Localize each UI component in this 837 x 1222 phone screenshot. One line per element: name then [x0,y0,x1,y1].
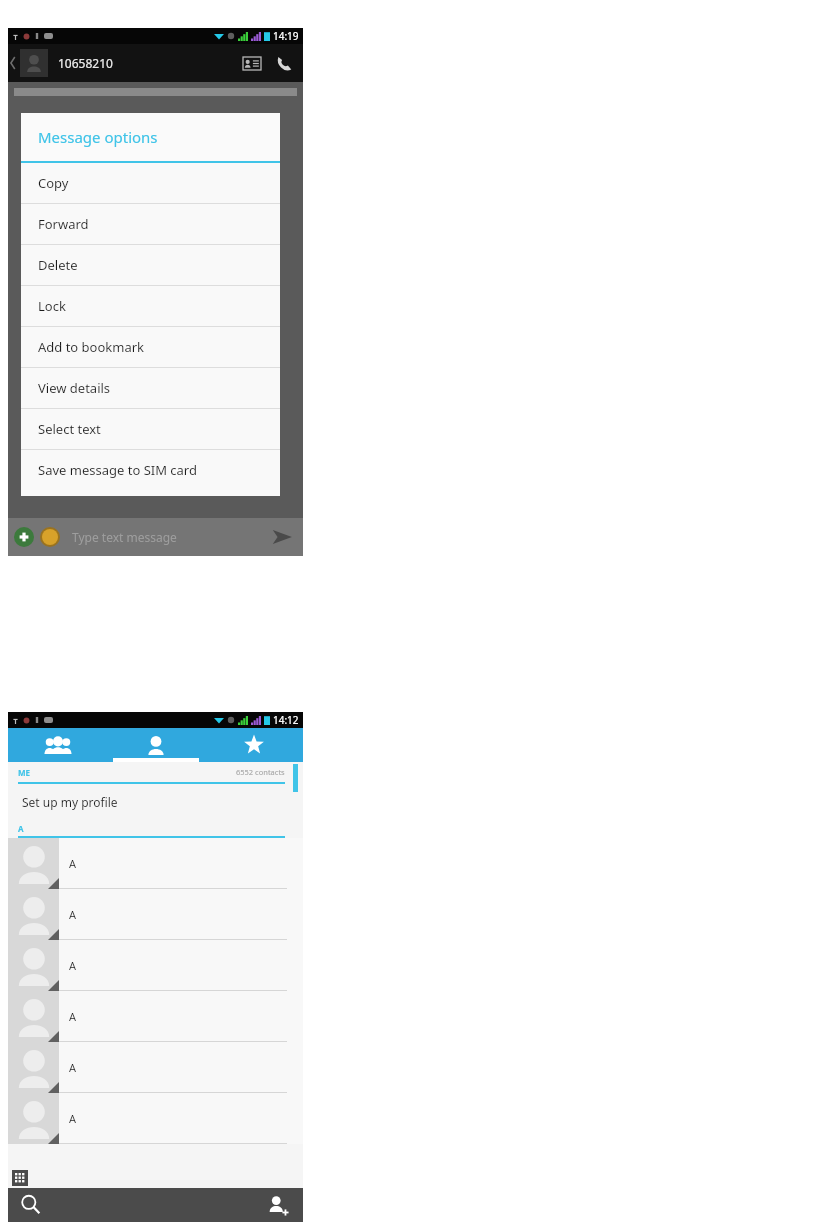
button[interactable]: Lock [21,286,280,326]
staticText: 14:19 [273,29,299,43]
button[interactable]: Emoji [40,527,60,547]
staticText: A [69,1111,77,1126]
staticText: 6552 contacts [236,767,285,777]
button[interactable]: Forward [21,204,280,244]
staticText: A [69,907,77,922]
button[interactable]: A [8,838,303,889]
button[interactable]: A [8,1093,303,1144]
button[interactable]: Set up my profile [8,784,303,820]
button[interactable]: Attach [14,527,34,547]
button[interactable]: Keypad [12,1170,28,1186]
staticText: Add to bookmark [38,338,145,356]
staticText: Set up my profile [22,794,118,810]
staticText: Delete [38,256,78,274]
staticText: A [69,1009,77,1024]
button[interactable]: Contacts [107,728,205,762]
staticText: Select text [38,420,101,438]
button[interactable]: Call [269,46,299,80]
button[interactable]: A [8,940,303,991]
staticText: Save message to SIM card [38,461,197,479]
staticText: A [69,856,77,871]
button[interactable]: A [8,889,303,940]
button[interactable]: A [8,991,303,1042]
staticText: ME [18,767,31,778]
button[interactable]: Save message to SIM card [21,450,280,490]
staticText: A [69,958,77,973]
button[interactable]: A [8,1042,303,1093]
staticText: Copy [38,174,69,192]
button[interactable]: Search [20,1194,42,1216]
staticText: 14:12 [273,713,299,727]
staticText: Message options [38,127,158,147]
button[interactable]: Copy [21,163,280,203]
staticText: 10658210 [58,55,113,71]
button[interactable]: Back [8,44,18,82]
staticText: Type text message [72,529,177,545]
button[interactable]: Favorites [205,728,303,762]
button[interactable]: Add to bookmark [21,327,280,367]
button[interactable]: Add contact [267,1194,289,1216]
staticText: Forward [38,215,89,233]
staticText: Lock [38,297,66,315]
staticText: A [18,823,24,834]
staticText: A [69,1060,77,1075]
button[interactable]: Groups [8,728,107,762]
button[interactable]: View details [21,368,280,408]
button[interactable]: Contact details [235,46,269,80]
button[interactable]: Delete [21,245,280,285]
button[interactable]: Send [269,524,295,550]
staticText: View details [38,379,111,397]
button[interactable]: Select text [21,409,280,449]
